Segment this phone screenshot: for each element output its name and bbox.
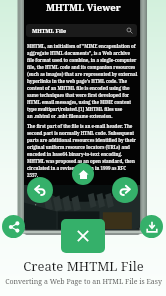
button[interactable]: Back xyxy=(27,177,53,203)
staticText: MHTML, an initialism of "MIME encapsulat… xyxy=(27,43,138,119)
button[interactable]: Home xyxy=(72,163,94,185)
button[interactable]: Download xyxy=(140,215,163,238)
button[interactable]: Forward xyxy=(112,177,138,203)
staticText: The first part of the file is an e-mail … xyxy=(27,123,138,178)
staticText: Converting a Web Page to an HTML File is… xyxy=(5,277,162,287)
button[interactable]: Share xyxy=(2,215,25,238)
button[interactable]: Close xyxy=(61,219,105,253)
staticText: MHTML File xyxy=(32,27,67,34)
staticText: Create MHTML File xyxy=(23,257,144,275)
staticText: MHTML Viewer xyxy=(46,1,121,14)
button[interactable]: MHTML File xyxy=(26,24,137,37)
